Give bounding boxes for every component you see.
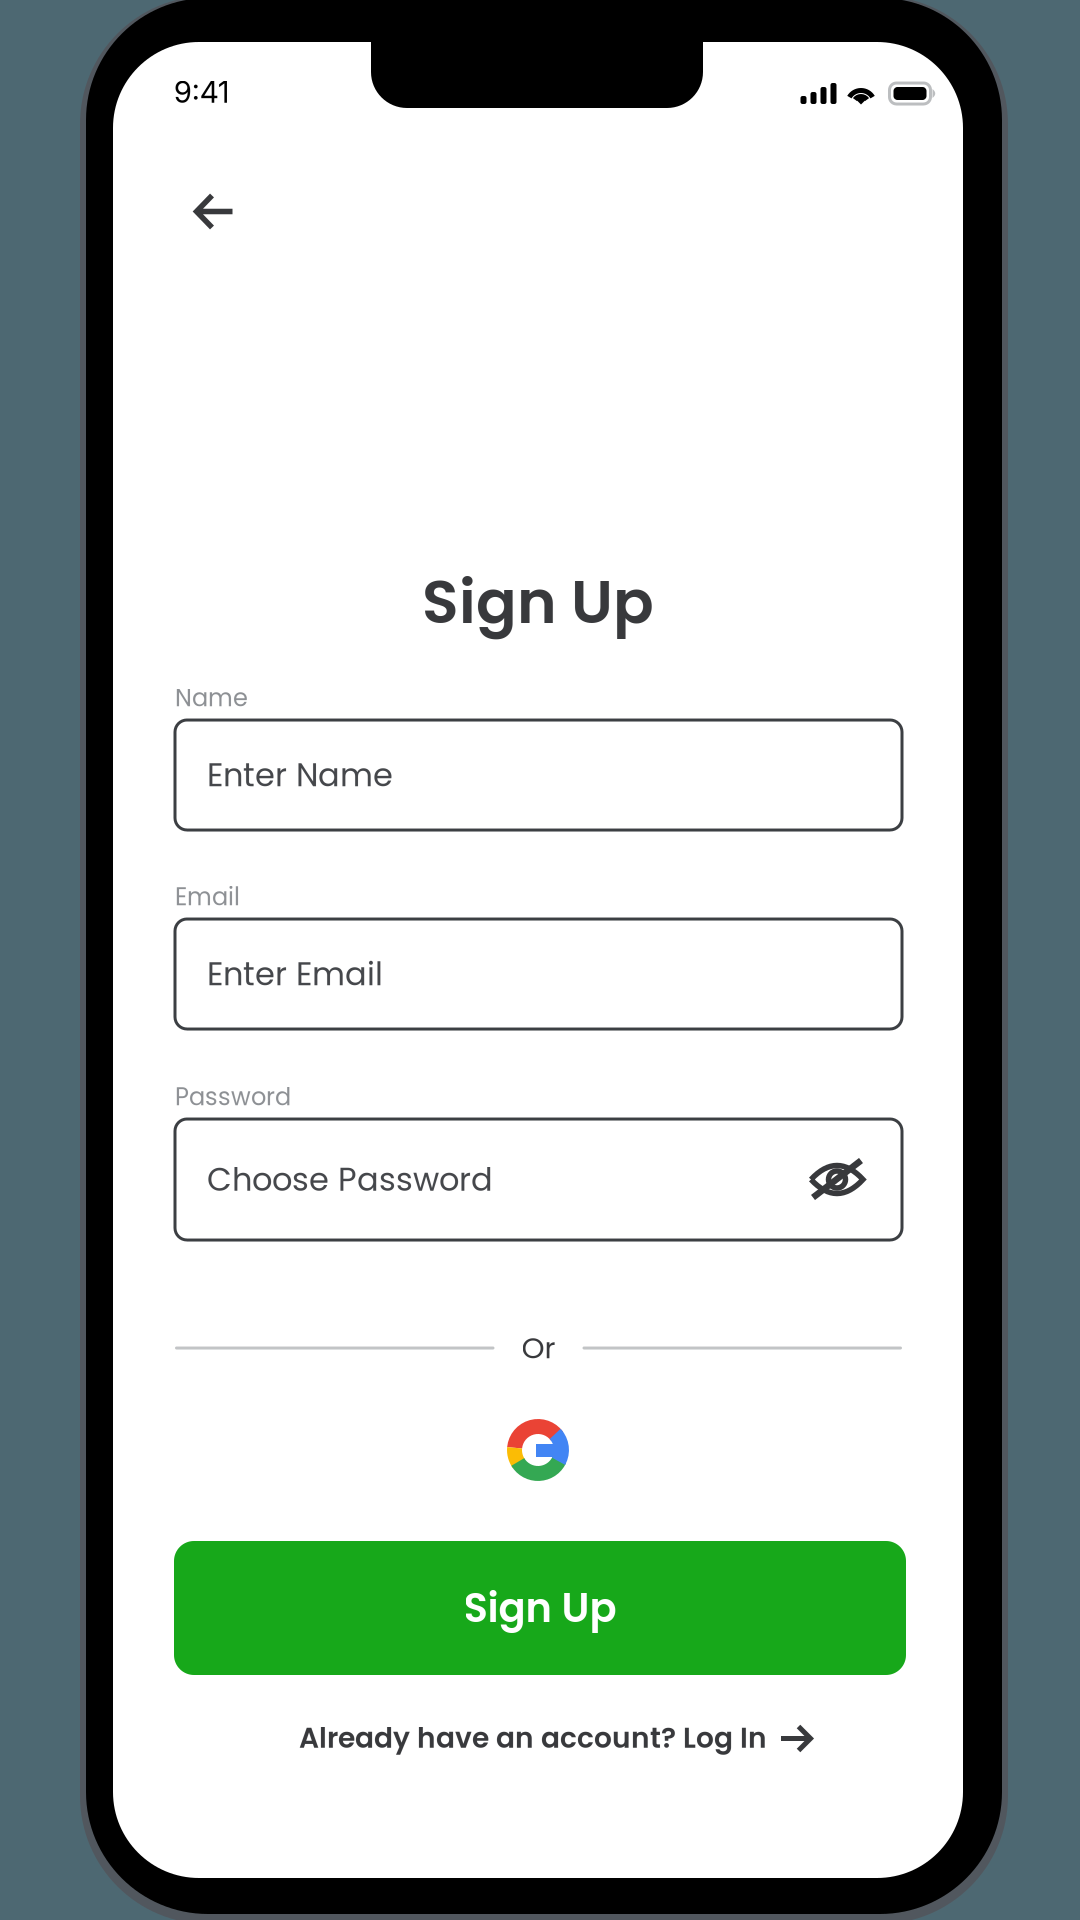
staticText: Enter Email [207, 952, 383, 996]
staticText: Choose Password [207, 1157, 493, 1202]
button[interactable]: Enter Email [175, 919, 902, 1029]
staticText: Already have an account? Log In [299, 1718, 767, 1758]
button[interactable]: Sign Up [174, 1541, 906, 1675]
button[interactable]: Choose Password [175, 1119, 902, 1240]
staticText: Email [175, 880, 240, 914]
staticText: Sign Up [463, 1580, 616, 1636]
button[interactable]: Sign up with Google [507, 1419, 569, 1481]
button[interactable]: Back [157, 168, 277, 256]
staticText: Name [175, 681, 248, 715]
staticText: Enter Name [207, 753, 393, 797]
staticText: Sign Up [422, 560, 654, 644]
button[interactable]: Enter Name [175, 720, 902, 830]
staticText: Password [175, 1080, 291, 1114]
staticText: 9:41 [174, 74, 229, 110]
button[interactable]: Already have an account? Log In [299, 1700, 813, 1776]
staticText: Or [521, 1327, 555, 1369]
